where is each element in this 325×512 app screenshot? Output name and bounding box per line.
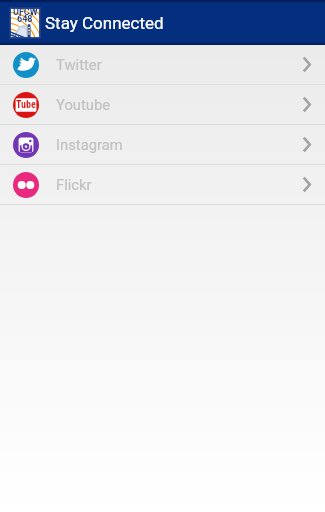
staticText: Youtube — [56, 96, 111, 113]
staticText: UFCW — [13, 7, 38, 18]
staticText: Stay Connected — [45, 13, 164, 33]
button[interactable]: Twitter — [0, 45, 325, 84]
button[interactable]: UFCW 648 logo — [10, 8, 40, 38]
staticText: 648 — [17, 14, 33, 25]
staticText: Flickr — [56, 176, 92, 193]
button[interactable]: Tube — [0, 85, 325, 124]
staticText: Twitter — [56, 56, 102, 73]
button[interactable]: Flickr — [0, 165, 325, 204]
staticText: Instagram — [56, 136, 123, 153]
staticText: Tube — [16, 99, 36, 111]
button[interactable]: Instagram — [0, 125, 325, 164]
